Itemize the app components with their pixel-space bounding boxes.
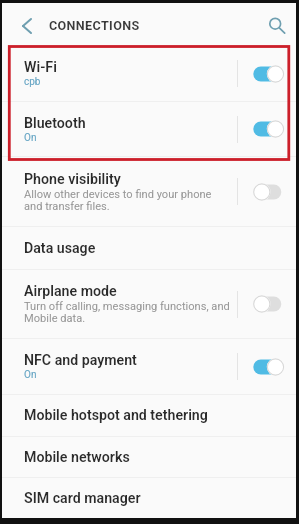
- button[interactable]: On: [238, 62, 296, 86]
- staticText: Allow other devices to find your phone a…: [24, 188, 212, 213]
- staticText: On: [24, 369, 37, 381]
- button[interactable]: Bluetooth: [2, 102, 296, 156]
- button[interactable]: On: [238, 355, 296, 379]
- button[interactable]: Off: [238, 180, 296, 204]
- staticText: Bluetooth: [24, 115, 86, 132]
- button[interactable]: Airplane mode: [2, 270, 296, 338]
- staticText: NFC and payment: [24, 352, 137, 369]
- staticText: Mobile networks: [24, 449, 130, 466]
- staticText: Mobile hotspot and tethering: [24, 407, 208, 424]
- button[interactable]: Wi-Fi: [2, 46, 296, 101]
- button[interactable]: Mobile networks: [2, 437, 296, 477]
- button[interactable]: Mobile hotspot and tethering: [2, 395, 296, 436]
- button[interactable]: NFC and payment: [2, 339, 296, 394]
- staticText: SIM card manager: [24, 490, 141, 507]
- button[interactable]: On: [238, 117, 296, 141]
- button[interactable]: Phone visibility: [2, 157, 296, 226]
- staticText: Turn off calling, messaging functions, a…: [24, 300, 230, 325]
- button[interactable]: Search: [252, 3, 296, 46]
- button[interactable]: SIM card manager: [2, 478, 296, 518]
- staticText: Wi-Fi: [24, 59, 57, 76]
- staticText: cpb: [24, 76, 41, 88]
- button[interactable]: Navigate up: [2, 3, 44, 46]
- staticText: Phone visibility: [24, 171, 121, 188]
- button[interactable]: Off: [238, 292, 296, 316]
- button[interactable]: Data usage: [2, 227, 296, 269]
- staticText: CONNECTIONS: [49, 18, 140, 33]
- staticText: Data usage: [24, 240, 96, 257]
- staticText: Airplane mode: [24, 283, 117, 300]
- staticText: On: [24, 132, 37, 144]
